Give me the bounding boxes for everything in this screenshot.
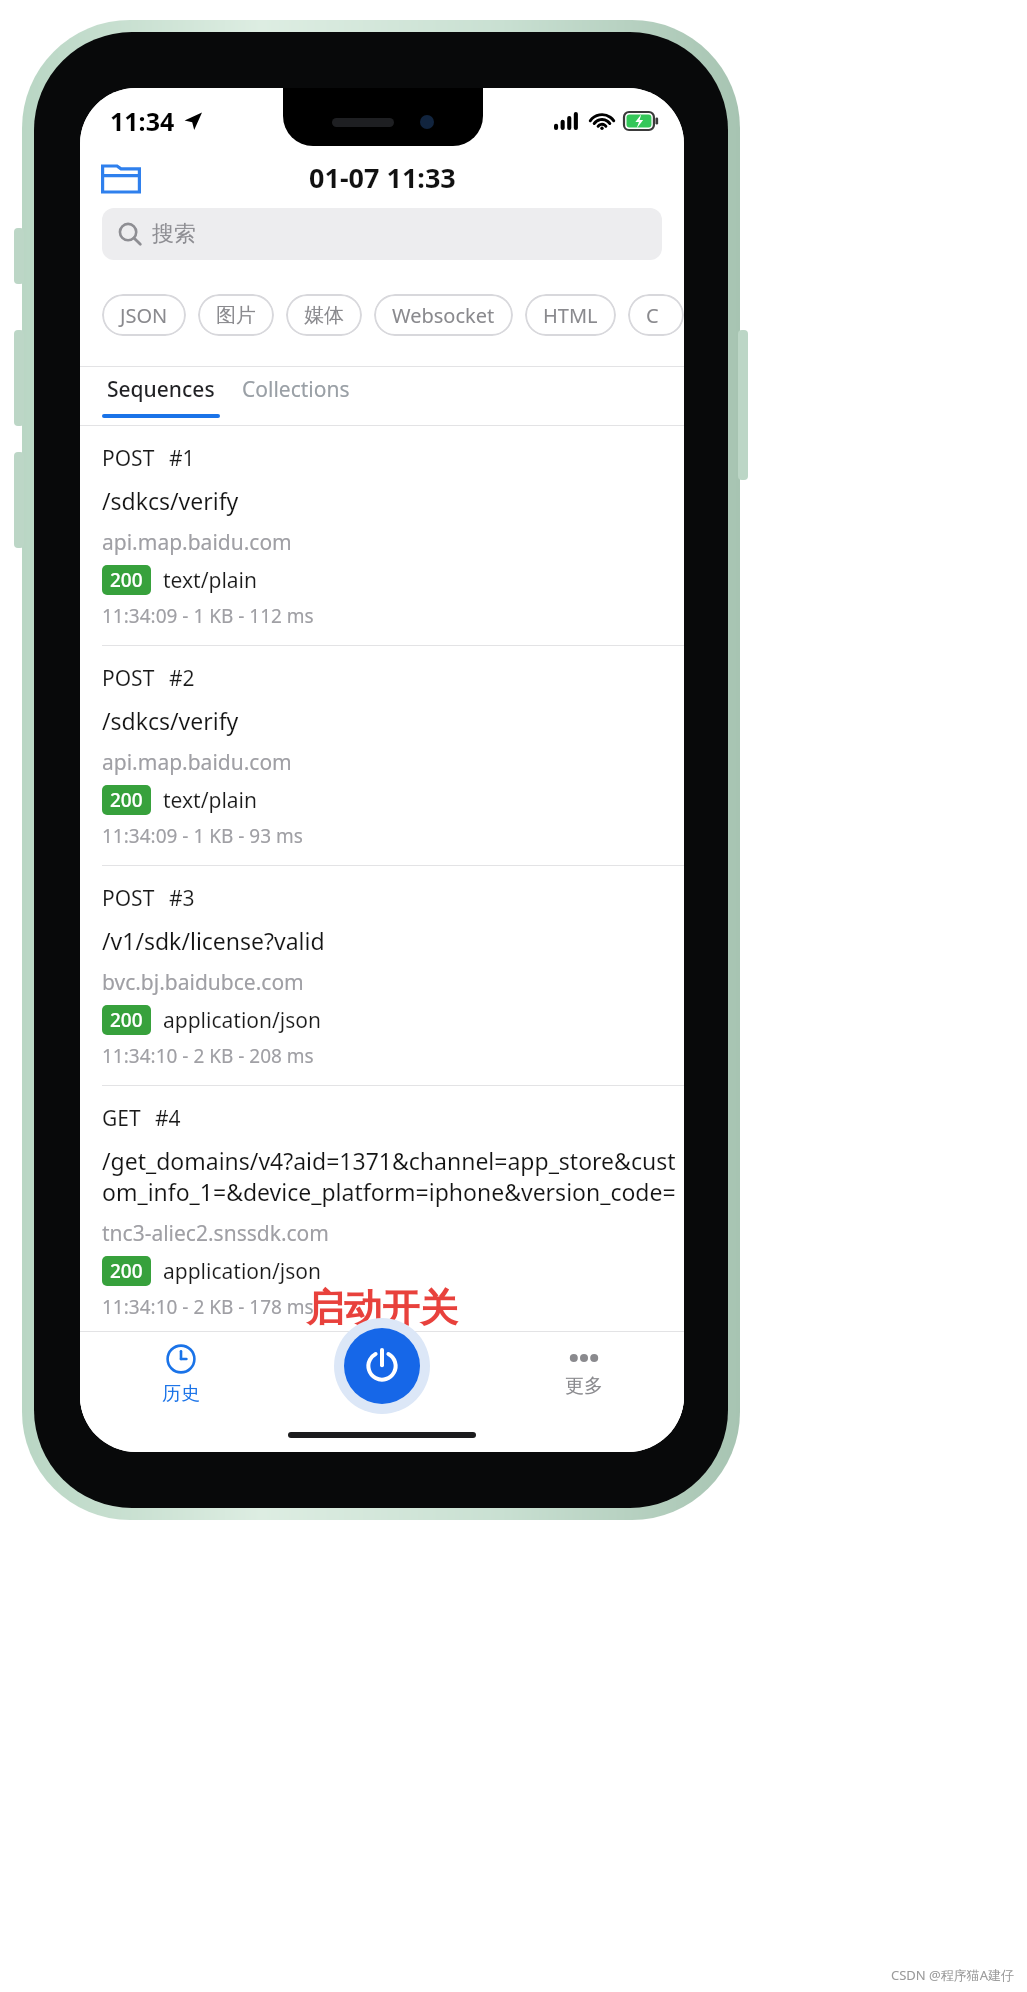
button[interactable]: POST	[80, 646, 684, 866]
staticText: POST	[102, 664, 155, 693]
button[interactable]: Power toggle	[344, 1328, 420, 1404]
staticText: api.map.baidu.com	[102, 528, 292, 557]
staticText: 200	[110, 787, 143, 813]
staticText: POST	[102, 444, 155, 473]
button[interactable]: JSON	[102, 294, 186, 336]
staticText: #4	[155, 1104, 181, 1133]
staticText: text/plain	[163, 566, 258, 595]
staticText: CSDN @程序猫A建仔	[891, 1966, 1015, 1984]
staticText: 历史	[162, 1382, 200, 1406]
button[interactable]: Sequences	[102, 375, 220, 418]
staticText: 11:34	[110, 104, 175, 138]
button[interactable]: Collections	[242, 375, 350, 404]
staticText: GET	[102, 1104, 141, 1133]
button[interactable]: CSS	[628, 294, 684, 336]
staticText: /sdkcs/verify	[102, 485, 239, 516]
staticText: JSON	[120, 302, 168, 329]
button[interactable]: 媒体	[286, 294, 362, 336]
button[interactable]: Websocket	[374, 294, 513, 336]
staticText: 搜索	[152, 220, 196, 248]
staticText: /v1/sdk/license?valid	[102, 925, 325, 956]
staticText: 启动开关	[306, 1284, 458, 1332]
staticText: bvc.bj.baidubce.com	[102, 968, 304, 997]
staticText: /sdkcs/verify	[102, 705, 239, 736]
staticText: 11:34:09 - 1 KB - 112 ms	[102, 603, 314, 629]
staticText: #1	[169, 444, 195, 473]
staticText: POST	[102, 884, 155, 913]
button[interactable]: 更多	[483, 1332, 684, 1418]
staticText: 图片	[216, 303, 256, 328]
button[interactable]: 图片	[198, 294, 274, 336]
staticText: 200	[110, 567, 143, 593]
staticText: application/json	[163, 1006, 321, 1035]
staticText: #3	[169, 884, 195, 913]
staticText: HTML	[543, 302, 598, 329]
staticText: Websocket	[392, 302, 495, 329]
staticText: 11:34:10 - 2 KB - 208 ms	[102, 1043, 314, 1069]
staticText: Sequences	[107, 375, 215, 404]
staticText: CSS	[646, 302, 666, 329]
staticText: tnc3-aliec2.snssdk.com	[102, 1219, 329, 1248]
staticText: 01-07 11:33	[309, 159, 456, 196]
staticText: 11:34:10 - 2 KB - 178 ms	[102, 1294, 314, 1320]
button[interactable]: HTML	[525, 294, 616, 336]
button[interactable]: GET	[80, 1086, 684, 1331]
staticText: /get_domains/v4?aid=1371&channel=app_sto…	[102, 1145, 684, 1207]
staticText: 更多	[565, 1374, 603, 1398]
button[interactable]: 搜索	[102, 208, 662, 260]
staticText: #2	[169, 664, 195, 693]
staticText: application/json	[163, 1257, 321, 1286]
staticText: 200	[110, 1258, 143, 1284]
button[interactable]	[282, 1332, 483, 1418]
staticText: api.map.baidu.com	[102, 748, 292, 777]
button[interactable]: Folder	[98, 154, 144, 200]
staticText: text/plain	[163, 786, 258, 815]
staticText: 11:34:09 - 1 KB - 93 ms	[102, 823, 303, 849]
button[interactable]: 历史	[80, 1332, 282, 1418]
staticText: 媒体	[304, 303, 344, 328]
button[interactable]: POST	[80, 866, 684, 1086]
staticText: 200	[110, 1007, 143, 1033]
button[interactable]: POST	[80, 426, 684, 646]
